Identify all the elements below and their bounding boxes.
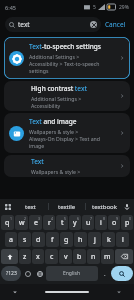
staticText: textile (58, 203, 76, 211)
button[interactable]: w (15, 215, 28, 230)
staticText: u (86, 218, 91, 228)
button[interactable]: Change language (34, 266, 45, 281)
button[interactable]: Clear (90, 21, 97, 28)
staticText: Cancel (105, 20, 126, 29)
staticText: 4 (51, 216, 54, 221)
staticText: e (34, 218, 38, 228)
staticText: Text-to-speech settings (29, 42, 101, 51)
staticText: 5 (93, 4, 96, 11)
button[interactable]: t (56, 215, 68, 230)
button[interactable]: d (32, 232, 45, 247)
staticText: z (23, 252, 27, 262)
button[interactable]: High contrast text (4, 81, 130, 111)
button[interactable]: Backspace (115, 249, 133, 264)
staticText: i (100, 218, 102, 228)
staticText: 2 (24, 216, 27, 221)
staticText: o (112, 218, 117, 228)
staticText: v (64, 252, 68, 262)
staticText: q (5, 218, 10, 228)
staticText: settings (29, 67, 49, 74)
staticText: p (125, 218, 130, 228)
button[interactable]: Text (4, 155, 130, 177)
staticText: w (19, 218, 25, 228)
staticText: t (61, 218, 64, 228)
staticText: 6 (77, 216, 80, 221)
button[interactable]: Text-to-speech settings (4, 37, 130, 79)
staticText: Always-On Display > Text and (29, 135, 101, 142)
button[interactable]: Text and image (4, 113, 130, 153)
button[interactable]: l (116, 232, 129, 247)
staticText: d (36, 235, 41, 245)
staticText: text (25, 203, 36, 211)
staticText: textbook (92, 203, 117, 211)
button[interactable]: p (121, 215, 133, 230)
staticText: Additional Settings > (29, 53, 80, 60)
button[interactable]: ?123 (1, 266, 21, 281)
staticText: k (107, 235, 111, 245)
button[interactable]: Emoji (22, 266, 33, 281)
staticText: Additional Settings > (31, 95, 82, 102)
button[interactable]: Home (45, 291, 89, 293)
button[interactable]: k (102, 232, 115, 247)
button[interactable]: y (69, 215, 81, 230)
staticText: b (77, 252, 82, 262)
button[interactable]: i (95, 215, 107, 230)
button[interactable]: s (18, 232, 31, 247)
staticText: n (91, 252, 96, 262)
staticText: text (18, 20, 30, 29)
other: Open (119, 163, 125, 169)
button[interactable]: g (60, 232, 73, 247)
staticText: a (9, 235, 13, 245)
button[interactable]: x (32, 249, 44, 264)
staticText: Wallpapers & style > (29, 128, 79, 135)
button[interactable]: q (1, 215, 14, 230)
button[interactable]: j (88, 232, 101, 247)
button[interactable]: textbook (86, 203, 122, 211)
button[interactable]: English (46, 266, 98, 281)
button[interactable]: text (12, 203, 48, 211)
button[interactable]: a (5, 232, 17, 247)
staticText: . (104, 270, 106, 278)
staticText: m (104, 252, 111, 262)
button[interactable]: textile (49, 203, 85, 211)
button[interactable]: m (101, 249, 114, 264)
button[interactable]: b (73, 249, 86, 264)
other: Search (9, 22, 15, 28)
button[interactable]: e (29, 215, 42, 230)
button[interactable]: Switch keyboard (114, 287, 124, 297)
button[interactable]: z (19, 249, 31, 264)
staticText: j (94, 235, 96, 245)
button[interactable]: Cancel (101, 18, 130, 31)
button[interactable]: v (59, 249, 72, 264)
staticText: 5 (64, 216, 67, 221)
staticText: 3 (38, 216, 41, 221)
button[interactable]: c (45, 249, 58, 264)
button[interactable]: Shift (1, 249, 18, 264)
button[interactable]: r (43, 215, 55, 230)
staticText: l (122, 235, 124, 245)
staticText: r (48, 218, 51, 228)
button[interactable]: n (87, 249, 100, 264)
button[interactable]: o (108, 215, 120, 230)
staticText: h (78, 235, 83, 245)
button[interactable]: u (82, 215, 94, 230)
button[interactable]: Toolbar (3, 202, 12, 211)
other: Open (119, 93, 125, 99)
staticText: image (29, 142, 45, 149)
staticText: 7 (90, 216, 93, 221)
staticText: Text (31, 157, 44, 166)
button[interactable]: Voice input (122, 202, 131, 211)
staticText: 6:45 (5, 4, 16, 11)
other: Open (119, 130, 125, 136)
staticText: ?123 (6, 270, 17, 277)
button[interactable]: Search (111, 266, 133, 281)
staticText: c (50, 252, 54, 262)
button[interactable]: h (74, 232, 87, 247)
button[interactable]: f (46, 232, 59, 247)
staticText: 9 (116, 216, 119, 221)
staticText: x (36, 252, 40, 262)
button[interactable]: Search (5, 17, 101, 32)
button[interactable]: Period (99, 266, 110, 281)
button[interactable]: Hide keyboard (10, 287, 20, 297)
staticText: f (51, 235, 54, 245)
